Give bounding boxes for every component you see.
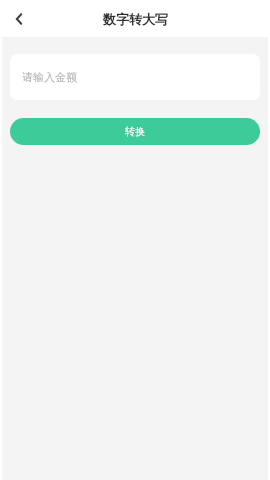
button[interactable]: Back (2, 2, 36, 36)
staticText: 数字转大写 (103, 11, 168, 27)
staticText: 转换 (125, 125, 145, 138)
button[interactable]: 请输入金额 (10, 54, 260, 100)
button[interactable]: 转换 (10, 118, 260, 145)
staticText: 请输入金额 (22, 70, 77, 84)
